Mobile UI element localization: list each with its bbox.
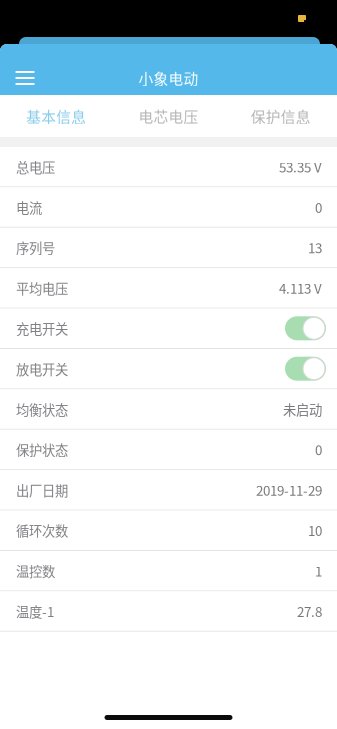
- staticText: 保护信息: [251, 105, 311, 127]
- button[interactable]: 平均电压: [0, 268, 337, 309]
- button[interactable]: 序列号: [0, 228, 337, 268]
- staticText: 平均电压: [16, 278, 68, 297]
- staticText: 小象电动: [138, 67, 198, 89]
- button[interactable]: 电流: [0, 187, 337, 228]
- staticText: 2019-11-29: [256, 480, 322, 499]
- staticText: 电芯电压: [138, 105, 198, 127]
- staticText: 53.35 V: [279, 157, 322, 176]
- button[interactable]: 均衡状态: [0, 389, 337, 430]
- staticText: 未启动: [283, 399, 322, 419]
- button[interactable]: Menu: [0, 61, 50, 95]
- button[interactable]: 循环次数: [0, 511, 337, 551]
- button[interactable]: 保护信息: [225, 95, 337, 137]
- staticText: 出厂日期: [16, 480, 68, 499]
- button[interactable]: 基本信息: [0, 95, 112, 137]
- button[interactable]: 放电开关: [0, 349, 337, 389]
- staticText: 保护状态: [16, 440, 68, 459]
- button[interactable]: 温控数: [0, 551, 337, 591]
- staticText: 0: [315, 197, 322, 217]
- staticText: 27.8: [297, 601, 322, 621]
- staticText: 充电开关: [16, 319, 68, 338]
- staticText: 总电压: [16, 157, 55, 176]
- button[interactable]: 温度-1: [0, 591, 337, 632]
- staticText: 温控数: [16, 561, 55, 580]
- button[interactable]: 保护状态: [0, 430, 337, 470]
- staticText: 电流: [16, 197, 42, 217]
- staticText: 0: [315, 440, 322, 459]
- staticText: 10: [308, 521, 322, 540]
- staticText: 放电开关: [16, 359, 68, 378]
- staticText: 4.113 V: [279, 278, 322, 297]
- staticText: 基本信息: [26, 105, 86, 127]
- button[interactable]: 充电开关: [0, 309, 337, 349]
- button[interactable]: 出厂日期: [0, 470, 337, 511]
- staticText: 13: [308, 238, 322, 257]
- staticText: 均衡状态: [16, 399, 68, 419]
- staticText: 循环次数: [16, 521, 68, 540]
- button[interactable]: 总电压: [0, 147, 337, 187]
- button[interactable]: 电芯电压: [112, 95, 225, 137]
- staticText: 1: [315, 561, 322, 580]
- staticText: 温度-1: [16, 601, 54, 621]
- staticText: 序列号: [16, 238, 55, 257]
